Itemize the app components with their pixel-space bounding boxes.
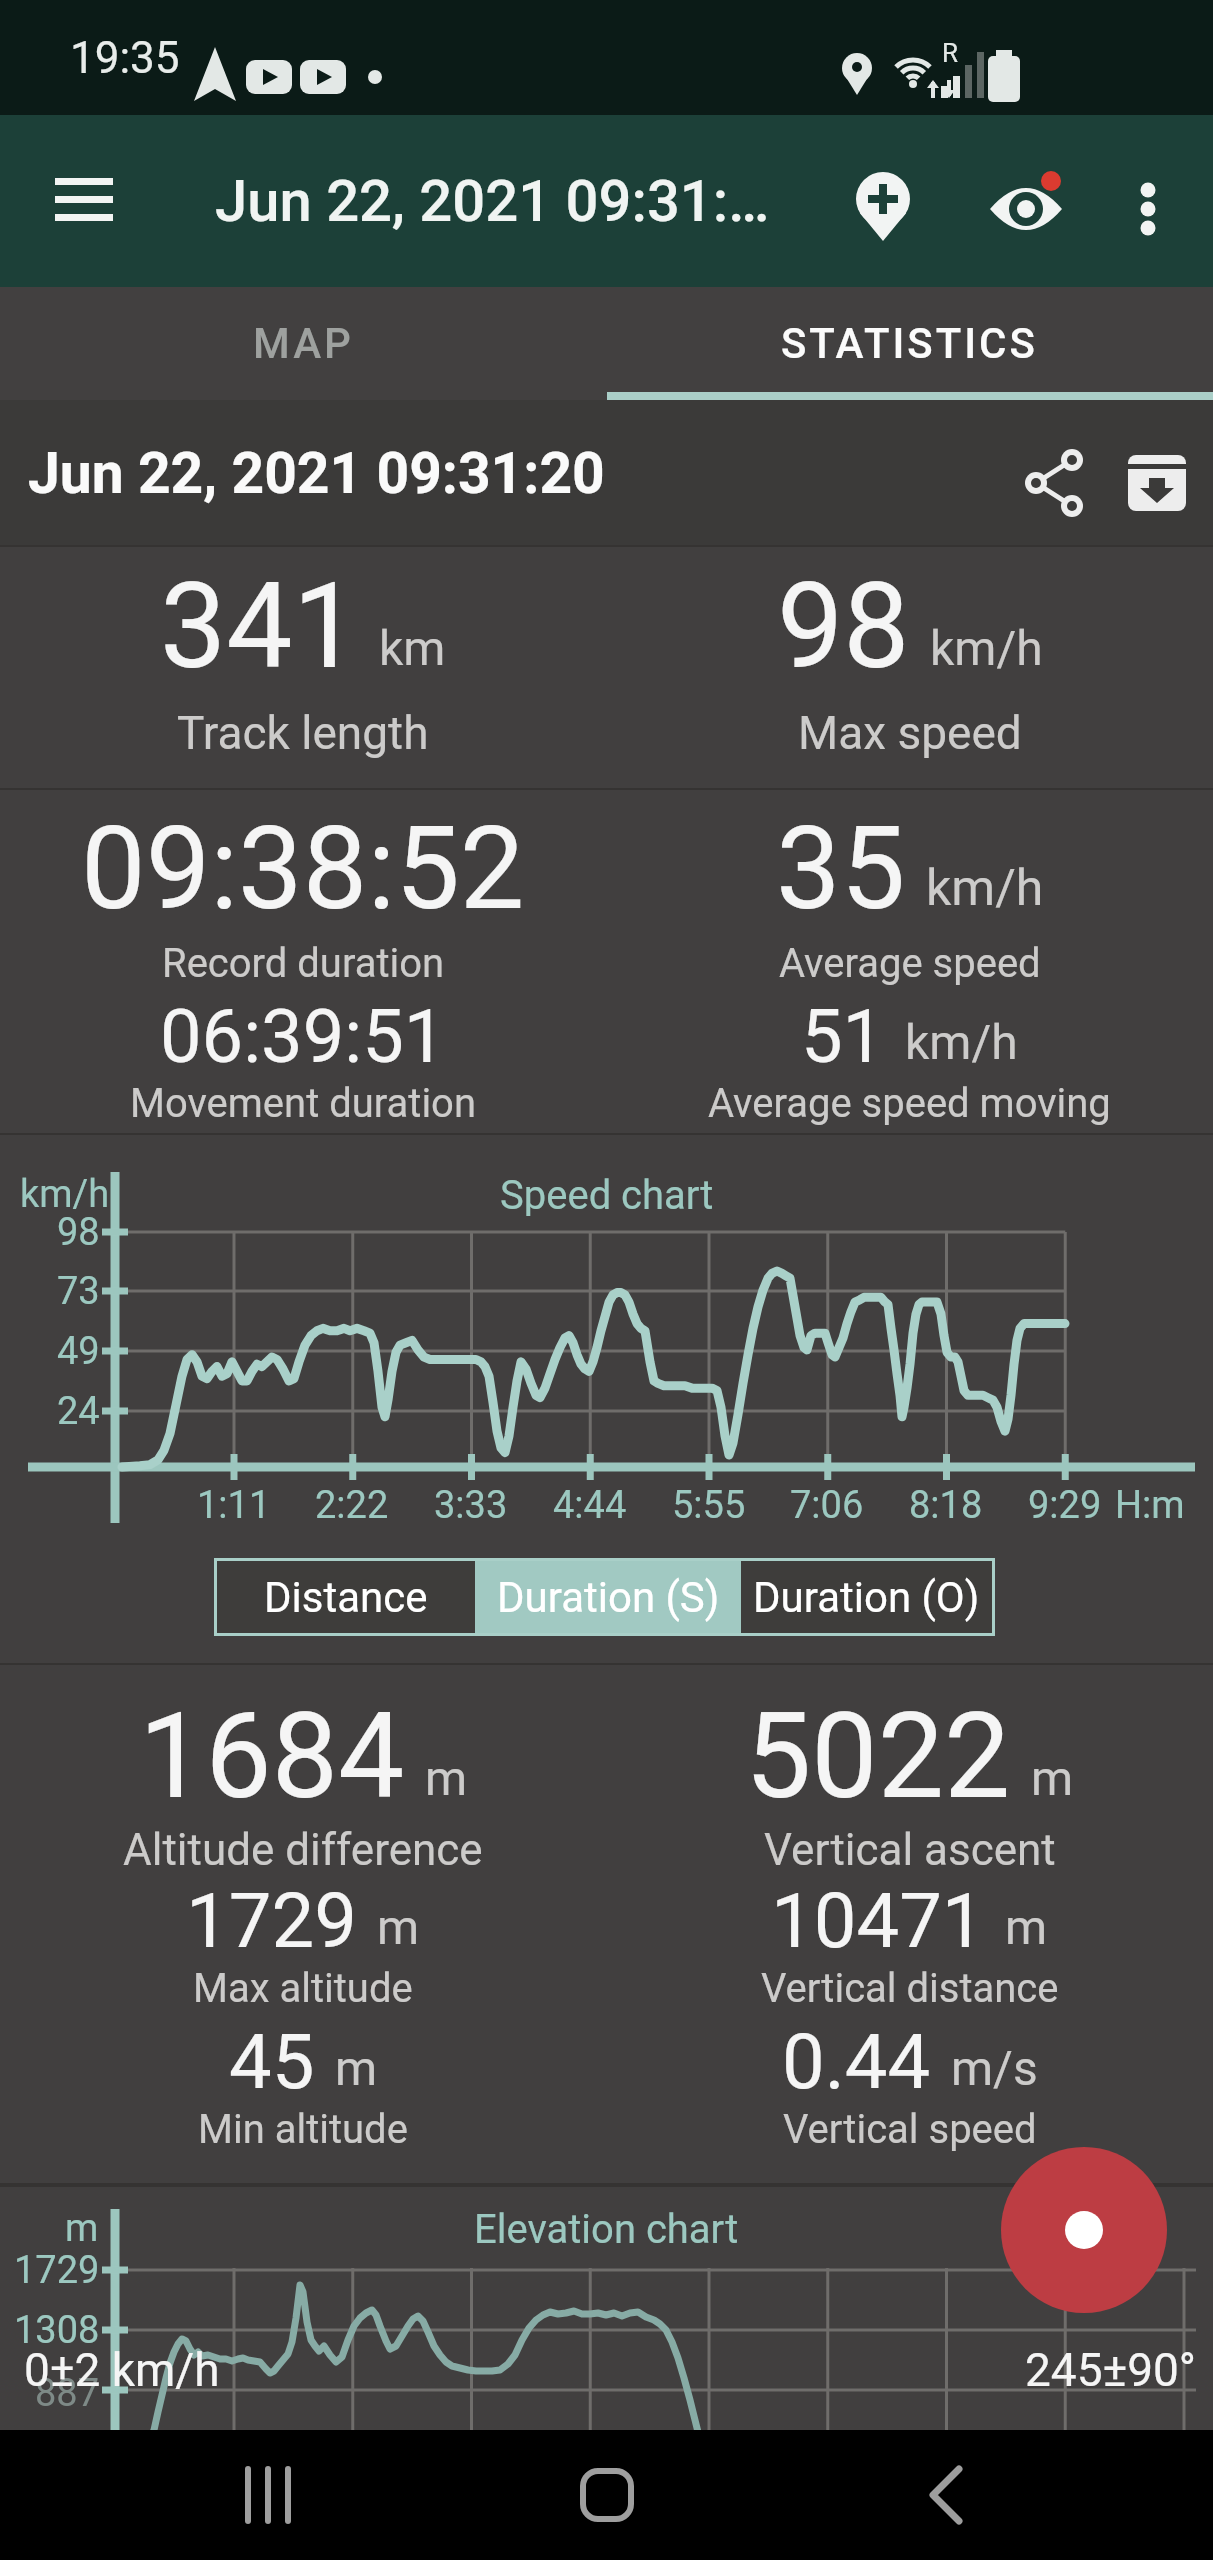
staticText: Duration (O)	[753, 1573, 980, 1622]
button[interactable]	[36, 201, 132, 297]
button[interactable]	[866, 2430, 1026, 2560]
staticText: 1729	[186, 1876, 357, 1965]
staticText: R	[942, 38, 959, 68]
staticText: 5022	[745, 1688, 1011, 1824]
staticText: 06:39:51	[160, 993, 446, 1080]
button[interactable]	[835, 153, 931, 249]
staticText: m	[425, 1750, 468, 1806]
staticText: Speed chart	[500, 1172, 714, 1216]
staticText: km	[379, 620, 446, 676]
staticText: Max altitude	[193, 1965, 413, 2012]
staticText: STATISTICS	[781, 319, 1038, 368]
button[interactable]	[527, 2430, 687, 2560]
staticText: 5:55	[672, 1483, 746, 1527]
staticText: m	[65, 2206, 99, 2250]
button[interactable]	[1005, 425, 1101, 521]
button[interactable]	[1110, 153, 1200, 243]
staticText: 73	[57, 1269, 100, 1313]
staticText: Vertical distance	[761, 1965, 1059, 2012]
staticText: 1729	[14, 2248, 100, 2292]
staticText: 8:18	[909, 1483, 983, 1527]
staticText: 1684	[139, 1688, 405, 1824]
staticText: Jun 22, 2021 09:31:…	[215, 167, 770, 235]
staticText: m	[377, 1899, 420, 1955]
staticText: Elevation chart	[474, 2206, 739, 2250]
staticText: Track length	[177, 706, 429, 760]
staticText: m/s	[951, 2040, 1038, 2096]
staticText: H:m	[1115, 1483, 1185, 1527]
button[interactable]: Distance	[217, 1561, 475, 1633]
staticText: 3:33	[434, 1483, 508, 1527]
staticText: 341	[160, 558, 359, 694]
staticText: 10471	[771, 1876, 985, 1965]
staticText: km/h	[905, 1014, 1018, 1070]
staticText: Vertical speed	[783, 2106, 1037, 2153]
staticText: Movement duration	[130, 1080, 477, 1127]
staticText: Average speed moving	[708, 1080, 1111, 1127]
button[interactable]	[1001, 2147, 1167, 2313]
staticText: km/h	[20, 1172, 110, 1216]
staticText: 887	[35, 2371, 100, 2415]
button[interactable]: STATISTICS	[606, 287, 1213, 400]
staticText: m	[1031, 1750, 1074, 1806]
staticText: 4:44	[553, 1483, 627, 1527]
staticText: 7:06	[790, 1483, 864, 1527]
staticText: 1:11	[197, 1483, 271, 1527]
staticText: 9:29	[1028, 1483, 1102, 1527]
staticText: km/h	[930, 620, 1043, 676]
staticText: km/h	[926, 859, 1044, 918]
button[interactable]	[1110, 425, 1206, 521]
staticText: 19:35	[70, 32, 180, 84]
staticText: 24	[57, 1389, 100, 1433]
staticText: 51	[801, 993, 885, 1080]
staticText: m	[1005, 1899, 1048, 1955]
staticText: 245±90°	[1025, 2343, 1197, 2397]
staticText: 1308	[14, 2308, 100, 2352]
staticText: Jun 22, 2021 09:31:20	[28, 440, 605, 507]
button[interactable]	[188, 2430, 348, 2560]
staticText: 09:38:52	[81, 801, 525, 936]
staticText: 49	[57, 1329, 100, 1373]
staticText: Duration (S)	[497, 1573, 720, 1622]
staticText: 45	[229, 2017, 315, 2106]
staticText: Max speed	[798, 706, 1022, 760]
staticText: 98	[777, 558, 910, 694]
button[interactable]: Duration (O)	[741, 1561, 992, 1633]
staticText: 2:22	[315, 1483, 389, 1527]
staticText: Vertical ascent	[764, 1824, 1056, 1876]
staticText: Average speed	[779, 940, 1041, 987]
staticText: Record duration	[162, 940, 445, 987]
staticText: m	[335, 2040, 378, 2096]
staticText: Min altitude	[198, 2106, 408, 2153]
staticText: 0.44	[782, 2017, 931, 2106]
button[interactable]: Duration (S)	[475, 1561, 741, 1633]
staticText: Altitude difference	[123, 1824, 483, 1876]
button[interactable]: MAP	[0, 287, 606, 400]
staticText: 35	[776, 801, 906, 936]
button[interactable]	[978, 153, 1074, 249]
staticText: Distance	[264, 1573, 428, 1622]
staticText: 0±2 km/h	[24, 2343, 220, 2397]
staticText: MAP	[253, 319, 354, 368]
staticText: 98	[57, 1210, 100, 1254]
